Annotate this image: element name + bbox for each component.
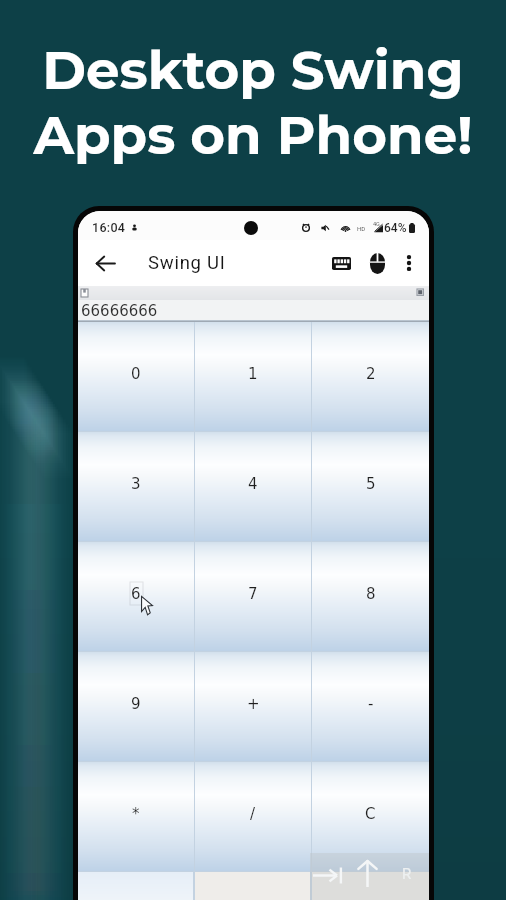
- button[interactable]: Shift: [352, 856, 383, 890]
- button[interactable]: C: [312, 762, 429, 871]
- staticText: C: [365, 805, 376, 822]
- staticText: 8: [366, 585, 376, 602]
- staticText: 4: [248, 475, 258, 492]
- staticText: 66666666: [81, 302, 158, 319]
- staticText: 3: [131, 475, 141, 492]
- button[interactable]: 2: [312, 322, 429, 431]
- staticText: 64%: [384, 221, 407, 235]
- button[interactable]: R: [395, 861, 419, 887]
- button[interactable]: +: [195, 652, 311, 761]
- staticText: /: [250, 805, 256, 822]
- button[interactable]: Keyboard: [321, 243, 362, 283]
- staticText: 7: [248, 585, 258, 602]
- staticText: Swing UI: [148, 252, 226, 274]
- button[interactable]: 1: [195, 322, 311, 431]
- button[interactable]: 3: [78, 432, 194, 541]
- staticText: 16:04: [92, 220, 126, 235]
- button[interactable]: -: [312, 652, 429, 761]
- button[interactable]: 6: [78, 542, 194, 651]
- button[interactable]: More options: [392, 243, 426, 283]
- staticText: *: [132, 805, 140, 822]
- staticText: 4G: [373, 221, 380, 227]
- staticText: 0: [131, 365, 141, 382]
- button[interactable]: 7: [195, 542, 311, 651]
- button[interactable]: 4: [195, 432, 311, 541]
- button[interactable]: 8: [312, 542, 429, 651]
- button[interactable]: Back: [84, 242, 126, 284]
- button[interactable]: 0: [78, 322, 194, 431]
- staticText: 5: [366, 475, 376, 492]
- staticText: 6: [131, 585, 141, 602]
- staticText: R: [402, 865, 412, 883]
- staticText: 9: [131, 695, 141, 712]
- staticText: Desktop Swing: [42, 38, 464, 103]
- button[interactable]: 5: [312, 432, 429, 541]
- staticText: Apps on Phone!: [33, 103, 473, 168]
- button[interactable]: *: [78, 762, 194, 871]
- staticText: +: [247, 695, 260, 712]
- button[interactable]: /: [195, 762, 311, 871]
- button[interactable]: [312, 872, 429, 900]
- staticText: 1: [248, 365, 258, 382]
- staticText: -: [368, 695, 374, 712]
- staticText: 2: [366, 365, 376, 382]
- staticText: HD: [357, 225, 366, 232]
- button[interactable]: Tab: [307, 861, 349, 889]
- button[interactable]: 9: [78, 652, 194, 761]
- button[interactable]: Mouse: [362, 243, 392, 283]
